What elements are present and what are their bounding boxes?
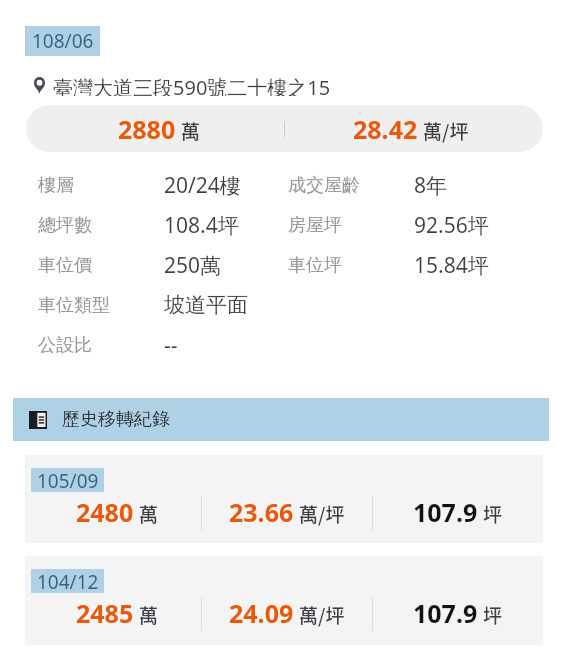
staticText: 萬/坪 bbox=[423, 117, 469, 145]
staticText: 歷史移轉紀錄 bbox=[62, 408, 170, 431]
staticText: 成交屋齡 bbox=[288, 174, 360, 197]
button[interactable]: 105/09 bbox=[25, 455, 543, 543]
staticText: 92.56坪 bbox=[414, 211, 489, 240]
staticText: 坪 bbox=[483, 601, 503, 629]
staticText: 2480 bbox=[76, 495, 134, 529]
button[interactable]: 104/12 bbox=[25, 556, 543, 645]
staticText: 105/09 bbox=[37, 468, 99, 492]
staticText: -- bbox=[164, 331, 178, 360]
staticText: 房屋坪 bbox=[288, 214, 342, 237]
button[interactable]: 2880 bbox=[26, 105, 543, 152]
staticText: 萬 bbox=[139, 500, 159, 528]
staticText: 臺灣大道三段590號二十樓之15 bbox=[53, 74, 331, 96]
staticText: 8年 bbox=[414, 171, 448, 200]
staticText: 24.09 bbox=[229, 596, 294, 630]
staticText: 2485 bbox=[76, 596, 134, 630]
staticText: 公設比 bbox=[38, 334, 92, 357]
staticText: 樓層 bbox=[38, 174, 74, 197]
staticText: 車位類型 bbox=[38, 294, 110, 317]
staticText: 23.66 bbox=[229, 495, 294, 529]
staticText: 107.9 bbox=[413, 495, 478, 529]
staticText: 15.84坪 bbox=[414, 251, 489, 280]
staticText: 萬/坪 bbox=[299, 601, 345, 629]
staticText: 車位坪 bbox=[288, 254, 342, 277]
staticText: 萬 bbox=[139, 601, 159, 629]
staticText: 108/06 bbox=[32, 28, 94, 54]
button[interactable]: Transfer history bbox=[13, 398, 549, 441]
staticText: 20/24樓 bbox=[164, 171, 241, 200]
other: Location bbox=[34, 77, 45, 94]
staticText: 28.42 bbox=[353, 112, 418, 146]
staticText: 107.9 bbox=[413, 596, 478, 630]
staticText: 總坪數 bbox=[38, 214, 92, 237]
staticText: 車位價 bbox=[38, 254, 92, 277]
staticText: 104/12 bbox=[37, 569, 99, 593]
staticText: 2880 bbox=[118, 112, 176, 146]
staticText: 坪 bbox=[483, 500, 503, 528]
staticText: 萬/坪 bbox=[299, 500, 345, 528]
other: Transfer history bbox=[29, 411, 47, 429]
staticText: 250萬 bbox=[164, 251, 222, 280]
staticText: 坡道平面 bbox=[164, 292, 248, 318]
staticText: 萬 bbox=[181, 117, 201, 145]
staticText: 108.4坪 bbox=[164, 211, 239, 240]
button[interactable]: Location bbox=[34, 74, 331, 96]
